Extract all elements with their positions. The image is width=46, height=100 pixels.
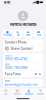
staticText: home [5,63,10,66]
staticText: Share Contact [10,47,32,50]
button[interactable]: FaceTime audio [39,73,41,75]
staticText: video [26,34,30,36]
staticText: (555) 784-0192 [5,66,28,70]
button[interactable]: Contacts [23,89,34,95]
staticText: mobile [5,54,12,57]
button[interactable]: Contact Photo [3,39,43,45]
staticText: Lists [4,93,8,95]
staticText: pamela@icloud.com [5,83,38,86]
staticText: email [5,80,11,83]
staticText: mail [37,34,40,36]
button[interactable]: message [3,30,12,37]
staticText: Keypad [37,93,43,95]
button[interactable]: Keypad [34,89,46,95]
button[interactable]: FaceTime video [35,73,37,75]
button[interactable]: home [3,62,43,71]
button[interactable]: email [3,79,43,87]
staticText: message [3,34,11,36]
staticText: Contacts [25,93,33,95]
button[interactable]: Share Contact [3,45,43,51]
staticText: 9:41 [3,0,10,5]
button[interactable]: call [13,30,22,37]
staticText: Contact Photo [5,40,27,44]
button[interactable]: mobile [3,53,43,62]
staticText: call [17,34,19,36]
button[interactable]: Lists [0,89,11,95]
staticText: (555) 013-4782 [5,57,28,61]
button[interactable]: mail [34,30,43,37]
button[interactable]: Recents [11,89,23,95]
staticText: Pamela Richards [9,22,36,27]
staticText: FaceTime [5,72,21,76]
button[interactable]: video [24,30,33,37]
staticText: Recents [14,93,21,95]
